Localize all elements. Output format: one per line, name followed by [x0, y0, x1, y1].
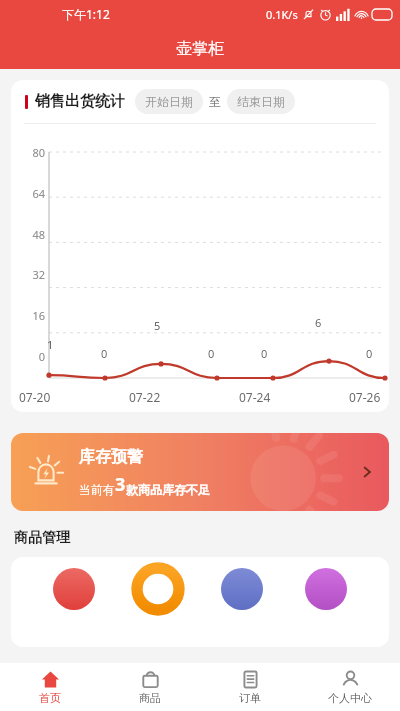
button[interactable]: 库存预警 [11, 433, 389, 511]
staticText: 1 [47, 337, 54, 352]
staticText: 07-24 [239, 389, 271, 405]
staticText: 0 [23, 349, 45, 364]
staticText: 0 [366, 346, 373, 361]
staticText: 07-20 [19, 389, 51, 405]
staticText: 0.1K/s [266, 7, 298, 22]
staticText: 首页 [39, 691, 61, 705]
other: 进入库存预警 [359, 464, 375, 480]
button[interactable]: 分类 [305, 568, 347, 610]
button[interactable]: 结束日期 [227, 89, 295, 114]
staticText: 壶掌柜 [176, 39, 224, 59]
staticText: 6 [315, 315, 322, 330]
staticText: 下午1:12 [62, 6, 110, 22]
staticText: 库存预警 [79, 447, 143, 467]
button[interactable]: 个人中心 [300, 663, 400, 711]
button[interactable]: 开始日期 [135, 89, 203, 114]
staticText: 款商品库存不足 [126, 482, 210, 497]
staticText: 64 [23, 186, 45, 201]
staticText: 商品管理 [14, 529, 70, 547]
staticText: 3 [115, 472, 126, 497]
staticText: 订单 [239, 691, 261, 705]
button[interactable]: 分类 [221, 568, 263, 610]
staticText: 个人中心 [328, 691, 372, 705]
staticText: 至 [209, 94, 221, 109]
staticText: 48 [23, 227, 45, 242]
staticText: 0 [208, 346, 215, 361]
staticText: 80 [23, 145, 45, 160]
staticText: 开始日期 [145, 94, 193, 109]
staticText: 0 [101, 346, 108, 361]
staticText: 0 [261, 346, 268, 361]
staticText: 5 [154, 318, 161, 333]
staticText: 结束日期 [237, 94, 285, 109]
staticText: 商品 [139, 691, 161, 705]
staticText: 07-22 [129, 389, 161, 405]
staticText: 16 [23, 308, 45, 323]
button[interactable]: 分类 [53, 568, 95, 610]
button[interactable]: 订单 [200, 663, 300, 711]
staticText: 07-26 [349, 389, 381, 405]
button[interactable]: 首页 [0, 663, 100, 711]
staticText: 销售出货统计 [35, 92, 125, 111]
staticText: 当前有 [79, 482, 115, 497]
staticText: 32 [23, 267, 45, 282]
button[interactable]: 分类 [137, 568, 179, 610]
button[interactable]: 商品 [100, 663, 200, 711]
